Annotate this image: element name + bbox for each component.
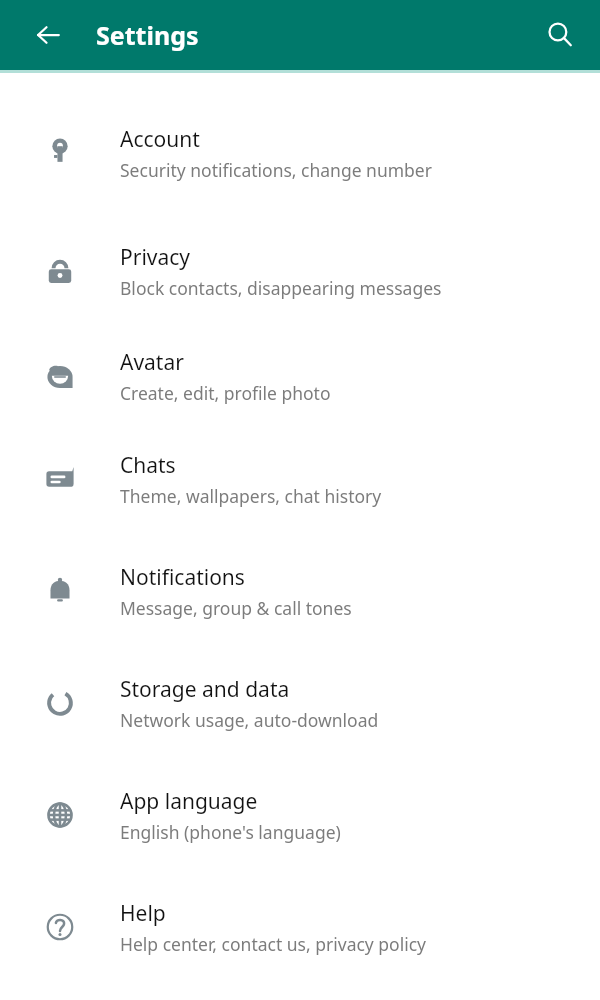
button[interactable]: Notifications [0,535,600,647]
staticText: Help center, contact us, privacy policy [120,932,427,956]
staticText: Avatar [120,348,184,377]
staticText: Network usage, auto-download [120,708,379,732]
button[interactable]: Search [520,0,600,70]
button[interactable]: App language [0,759,600,871]
staticText: Chats [120,451,176,480]
staticText: Notifications [120,563,245,592]
staticText: Message, group & call tones [120,596,352,620]
staticText: Privacy [120,243,191,272]
button[interactable]: Help [0,871,600,983]
staticText: Block contacts, disappearing messages [120,276,442,300]
staticText: Security notifications, change number [120,158,432,182]
button[interactable]: Chats [0,423,600,535]
staticText: Storage and data [120,675,290,704]
staticText: Account [120,125,200,154]
staticText: Theme, wallpapers, chat history [120,484,382,508]
button[interactable]: Avatar [0,330,600,423]
button[interactable]: Account [0,93,600,213]
staticText: Settings [96,18,199,52]
staticText: English (phone's language) [120,820,341,844]
button[interactable]: Back [0,0,96,70]
button[interactable]: Storage and data [0,647,600,759]
staticText: Help [120,899,166,928]
button[interactable]: Privacy [0,213,600,330]
staticText: Create, edit, profile photo [120,381,331,405]
staticText: App language [120,787,258,816]
